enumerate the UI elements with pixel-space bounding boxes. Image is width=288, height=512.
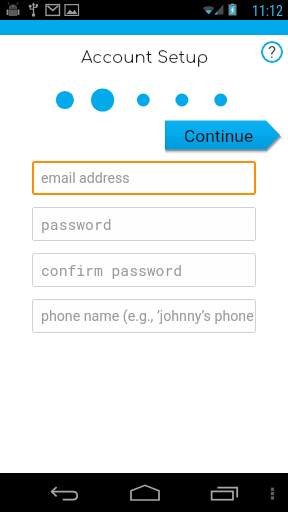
button[interactable]: More options [258,473,288,512]
staticText: email address [41,170,130,187]
button[interactable]: Back [40,473,88,512]
button[interactable]: password [32,207,256,241]
button[interactable]: phone name (e.g., ’johnny’s phone’) [32,299,256,333]
staticText: Continue [184,126,254,146]
staticText: phone name (e.g., ’johnny’s phone’) [41,308,254,325]
staticText: password [41,215,112,234]
staticText: Account Setup [81,48,209,67]
button[interactable]: Recent apps [200,473,248,512]
button[interactable]: confirm password [32,253,256,287]
staticText: confirm password [41,261,183,280]
button[interactable]: Continue [160,116,286,156]
button[interactable]: Home [121,473,169,512]
staticText: 11:12 [252,3,283,19]
button[interactable]: Help [261,41,283,63]
button[interactable]: email address [32,161,256,195]
staticText: ? [268,42,277,62]
